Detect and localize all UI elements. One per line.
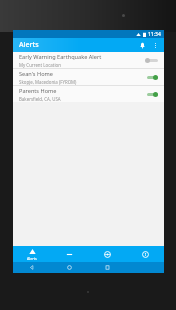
staticText: Sean's Home xyxy=(19,70,53,78)
button[interactable]: Alert off xyxy=(145,55,159,65)
button[interactable]: Home xyxy=(50,262,88,273)
button[interactable]: Alerts xyxy=(13,246,50,262)
button[interactable]: Alert on xyxy=(145,89,159,99)
button[interactable]: Back xyxy=(13,262,50,273)
button[interactable]: Tab xyxy=(126,246,164,262)
staticText: Early Warning Earthquake Alert xyxy=(19,53,102,61)
staticText: Parents Home xyxy=(19,87,57,95)
button[interactable]: Parents Home xyxy=(13,86,164,102)
button[interactable]: Sean's Home xyxy=(13,69,164,85)
button[interactable]: Notifications xyxy=(135,38,149,52)
button[interactable]: Tab xyxy=(50,246,88,262)
staticText: Alerts xyxy=(19,40,39,50)
staticText: Bakersfield, CA, USA xyxy=(19,96,61,102)
staticText: My Current Location xyxy=(19,62,61,68)
button[interactable]: Tab xyxy=(88,246,126,262)
button[interactable]: More options xyxy=(149,39,161,51)
staticText: Alerts xyxy=(27,256,37,261)
staticText: Skopje, Macedonia (FYROM) xyxy=(19,79,77,85)
staticText: 11:34 xyxy=(148,31,161,38)
button[interactable]: Alert on xyxy=(145,72,159,82)
button[interactable]: Recents xyxy=(88,262,126,273)
button[interactable]: Early Warning Earthquake Alert xyxy=(13,52,164,68)
